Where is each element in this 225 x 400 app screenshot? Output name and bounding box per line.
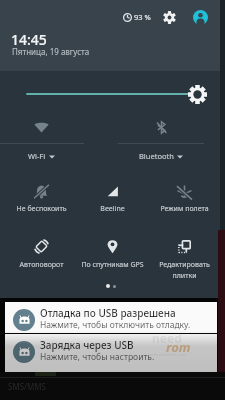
button[interactable]: Автоповорот <box>6 239 77 287</box>
staticText: 93 % <box>134 12 151 22</box>
button[interactable]: Редактировать плитки <box>149 239 220 287</box>
button[interactable]: User account <box>193 10 208 25</box>
staticText: www.needrom.com <box>149 352 186 357</box>
staticText: Wi-Fi <box>28 151 46 161</box>
button[interactable]: Beeline <box>77 184 148 232</box>
staticText: Нажмите, чтобы настроить. <box>40 351 155 363</box>
staticText: Зарядка через USB <box>40 338 134 352</box>
staticText: rom <box>166 338 191 356</box>
staticText: Отладка по USB разрешена <box>40 306 176 320</box>
button[interactable]: Не беспокоить <box>6 184 77 232</box>
button[interactable]: Отладка по USB разрешена <box>5 302 217 333</box>
button[interactable]: По спутникам GPS <box>77 239 148 287</box>
button[interactable]: Режим полета <box>149 184 220 232</box>
button[interactable]: 14:45 <box>11 30 47 49</box>
staticText: Beeline <box>77 204 148 214</box>
button[interactable]: Wi-Fi <box>0 114 91 164</box>
button[interactable]: Bluetooth <box>111 114 211 164</box>
staticText: По спутникам GPS <box>77 260 148 270</box>
button[interactable]: Зарядка через USB <box>5 334 217 372</box>
button[interactable]: Brightness <box>188 85 207 104</box>
staticText: SMS/MMS <box>8 381 46 392</box>
staticText: Редактировать плитки <box>149 260 220 280</box>
staticText: Bluetooth <box>139 151 174 161</box>
staticText: Режим полета <box>149 204 220 214</box>
staticText: Автоповорот <box>6 260 77 270</box>
button[interactable]: Пятница, 19 августа <box>12 46 90 57</box>
staticText: Нажмите, чтобы отключить отладку. <box>40 319 191 331</box>
staticText: need <box>152 330 182 346</box>
button[interactable]: Settings <box>163 11 176 24</box>
staticText: Не беспокоить <box>6 204 77 214</box>
